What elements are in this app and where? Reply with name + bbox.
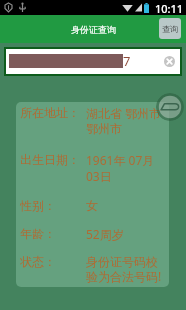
button[interactable]: Back (156, 93, 184, 121)
button[interactable]: 7 (4, 47, 182, 76)
staticText: 身份证查询 (71, 24, 116, 35)
staticText: 1961年 07月 03日 (86, 152, 155, 184)
staticText: 性别： (20, 198, 86, 213)
staticText: 女 (86, 198, 98, 213)
button[interactable]: Clear text (159, 51, 179, 71)
staticText: 所在地址： (20, 105, 86, 120)
button[interactable]: 所在地址： (16, 102, 169, 287)
staticText: 10:11 (155, 1, 184, 16)
staticText: 年龄： (20, 226, 86, 241)
button[interactable]: 查询 (159, 18, 181, 39)
staticText: 7 (123, 52, 131, 70)
staticText: 湖北省 鄂州市 鄂州市 (86, 105, 162, 137)
staticText: 状态： (20, 254, 86, 269)
staticText: 52周岁 (86, 226, 124, 242)
staticText: 查询 (162, 24, 178, 34)
staticText: 身份证号码校 验为合法号码! (86, 254, 162, 284)
staticText: 出生日期： (20, 152, 86, 167)
